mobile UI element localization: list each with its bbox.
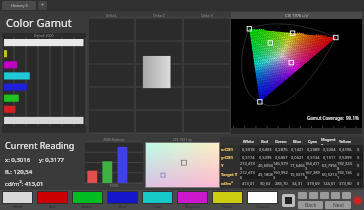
staticText: 0,1511 xyxy=(323,155,336,160)
staticText: cd/m²: 413,01 xyxy=(5,180,44,188)
staticText: 0,5099 xyxy=(339,155,352,160)
staticText: Magenta xyxy=(321,137,337,145)
staticText: 15,0375 xyxy=(290,172,305,177)
staticText: 319,69 xyxy=(307,181,320,186)
staticText: Blue xyxy=(293,139,302,144)
button[interactable]: Tool 3 xyxy=(320,192,329,199)
staticText: 34,31 xyxy=(292,181,303,186)
staticText: y:CIE1 xyxy=(221,155,234,160)
staticText: 0,3295 xyxy=(259,155,272,160)
staticText: CIE 1976 u'v' xyxy=(285,13,309,18)
button[interactable]: Blue xyxy=(107,191,138,209)
button[interactable]: Yellow xyxy=(212,191,243,209)
staticText: Gamut Coverage: 99.1% xyxy=(307,115,359,121)
staticText: 0 xyxy=(357,172,360,177)
button[interactable]: Green xyxy=(72,191,103,209)
staticText: 0,3174 xyxy=(242,155,255,160)
staticText: 0 xyxy=(357,181,360,186)
staticText: Blue xyxy=(119,204,127,209)
staticText: History 5 xyxy=(11,3,28,8)
staticText: 0,4196 xyxy=(339,147,352,152)
button[interactable]: Next xyxy=(325,201,351,209)
staticText: 212,4736 xyxy=(240,170,257,179)
staticText: Next xyxy=(333,202,344,209)
staticText: 0 xyxy=(357,147,360,152)
staticText: Target Y xyxy=(221,172,238,177)
staticText: 150,9523 xyxy=(273,170,289,179)
staticText: x: 0,3016 xyxy=(5,156,31,164)
staticText: Custom xyxy=(256,204,269,209)
staticText: Red xyxy=(49,204,56,209)
staticText: 413,01 xyxy=(242,181,255,186)
staticText: 192,3248 xyxy=(337,161,353,170)
staticText: 0,2876 xyxy=(275,147,288,152)
staticText: 0,1421 xyxy=(291,147,304,152)
staticText: y: 0,3177 xyxy=(39,156,64,164)
staticText: cd/m² xyxy=(221,181,233,186)
staticText: fL: 120,54 xyxy=(5,168,33,176)
staticText: 373,90 xyxy=(339,181,352,186)
staticText: x:CIE1 xyxy=(221,147,234,152)
staticText: Delta L xyxy=(89,13,134,18)
staticText: 100% xyxy=(85,183,143,188)
staticText: Red xyxy=(261,139,269,144)
button[interactable]: Measure xyxy=(282,194,295,207)
staticText: 0,0621 xyxy=(291,155,304,160)
button[interactable]: Magenta xyxy=(177,191,208,209)
staticText: 285,70 xyxy=(275,181,288,186)
button[interactable]: Add tab xyxy=(38,1,47,10)
staticText: White xyxy=(13,204,23,209)
staticText: 0,3204 xyxy=(323,147,336,152)
button[interactable]: Custom xyxy=(247,191,278,209)
staticText: 45,1808 xyxy=(258,172,273,177)
staticText: Green xyxy=(275,139,287,144)
staticText: 46,6094 xyxy=(258,163,273,168)
staticText: Cyan xyxy=(153,204,162,209)
staticText: 146,9791 xyxy=(273,161,289,170)
button[interactable]: Back xyxy=(298,201,323,209)
staticText: 212,4736 xyxy=(240,161,257,170)
button[interactable]: White xyxy=(2,191,33,209)
staticText: Delta C xyxy=(136,13,182,18)
staticText: 167,2898 xyxy=(305,170,321,179)
staticText: 17,6466 xyxy=(290,163,305,168)
staticText: Green xyxy=(82,204,93,209)
button[interactable]: Tool 2 xyxy=(309,192,318,199)
staticText: Cyan xyxy=(308,139,318,144)
staticText: Color Gamut xyxy=(6,15,72,30)
button[interactable]: Cyan xyxy=(142,191,173,209)
staticText: 63,7996 xyxy=(322,163,337,168)
staticText: 0,6403 xyxy=(259,147,272,152)
staticText: 0,3134 xyxy=(307,155,320,160)
staticText: 164,4713 xyxy=(305,161,321,170)
staticText: White xyxy=(243,139,254,144)
staticText: DeltaE 2000 xyxy=(34,33,54,38)
staticText: 0,3018 xyxy=(242,147,255,152)
staticText: 124,01 xyxy=(323,181,336,186)
button[interactable]: Tool 4 xyxy=(331,192,340,199)
staticText: CIE 1931 xy xyxy=(145,137,220,142)
staticText: 0 xyxy=(357,155,360,160)
staticText: 0,2089 xyxy=(307,147,320,152)
button[interactable]: Record xyxy=(353,196,362,205)
staticText: Delta H xyxy=(184,13,230,18)
staticText: Magenta xyxy=(185,204,200,209)
staticText: Y xyxy=(221,163,224,168)
staticText: RGB Balance xyxy=(85,137,143,142)
staticText: 0,6067 xyxy=(275,155,288,160)
button[interactable]: History 5 xyxy=(2,1,36,10)
staticText: 90,63 xyxy=(260,181,271,186)
staticText: Yellow xyxy=(222,204,233,209)
staticText: 60,5213 xyxy=(322,172,337,177)
staticText: Yellow xyxy=(339,139,351,144)
staticText: 0 xyxy=(357,163,360,168)
staticText: + xyxy=(41,2,44,9)
staticText: 192,1361 xyxy=(337,170,353,179)
button[interactable]: Tool 5 xyxy=(342,192,351,199)
button[interactable]: Tool 1 xyxy=(298,192,307,199)
staticText: Current Reading xyxy=(5,139,75,151)
button[interactable]: Red xyxy=(37,191,68,209)
staticText: Back xyxy=(305,202,317,209)
